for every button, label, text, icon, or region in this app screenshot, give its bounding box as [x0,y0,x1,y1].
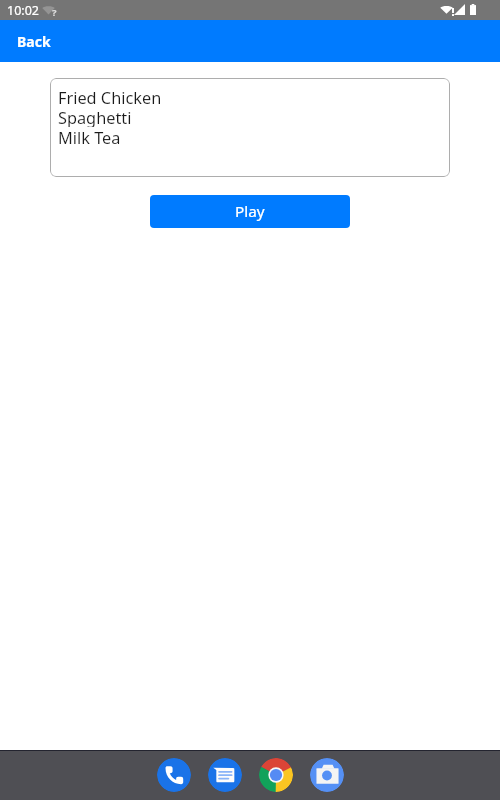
button[interactable]: Play [150,195,350,228]
button[interactable]: Messages [208,758,242,792]
staticText: ? [52,6,57,19]
staticText: Play [235,201,265,222]
staticText: Spaghetti [58,107,132,127]
button[interactable]: Phone [157,758,191,792]
button[interactable]: Chrome [259,758,293,792]
button[interactable]: Camera [310,758,344,792]
staticText: 10:02 [7,2,39,19]
button[interactable]: Back [0,26,63,57]
staticText: Milk Tea [58,127,121,147]
staticText: Back [17,32,51,51]
staticText: Fried Chicken [58,87,162,107]
